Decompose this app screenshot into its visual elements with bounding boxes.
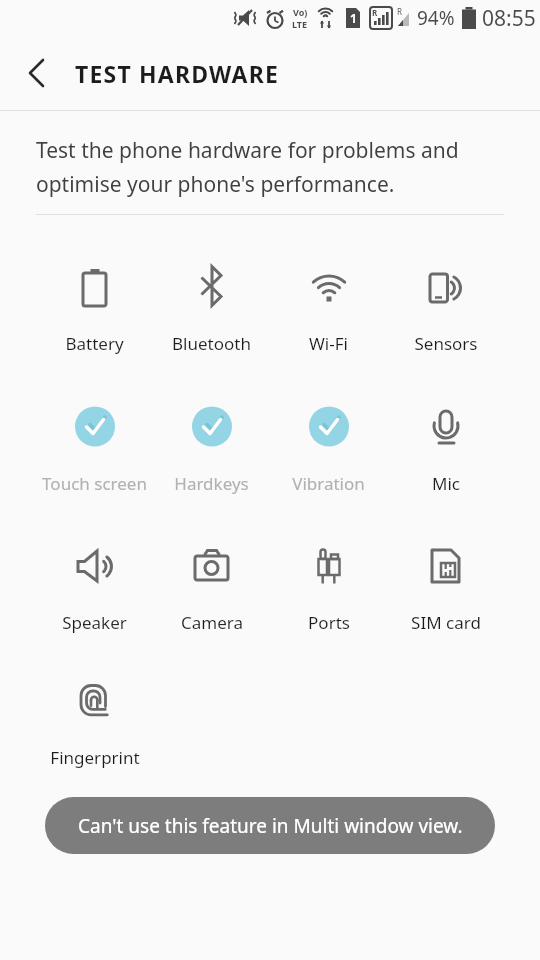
button[interactable]: Speaker — [36, 541, 153, 634]
staticText: 08:55 — [482, 4, 536, 33]
staticText: 94% — [417, 5, 455, 31]
staticText: Ports — [308, 611, 350, 634]
staticText: Test the phone hardware for problems and… — [36, 136, 459, 198]
staticText: Can't use this feature in Multi window v… — [78, 813, 463, 839]
button[interactable]: Touch screen — [36, 402, 153, 495]
staticText: Speaker — [62, 611, 127, 634]
staticText: Battery — [65, 332, 124, 355]
staticText: Camera — [181, 611, 243, 634]
staticText: Vibration — [292, 472, 365, 495]
button[interactable]: Vibration — [270, 402, 387, 495]
button[interactable]: Sensors — [387, 262, 504, 355]
button[interactable]: Mic — [387, 402, 504, 495]
button[interactable]: Can't use this feature in Multi window v… — [45, 797, 495, 854]
button[interactable]: Ports — [270, 541, 387, 634]
staticText: Wi-Fi — [309, 332, 348, 355]
staticText: Fingerprint — [50, 746, 140, 769]
staticText: Vo) — [293, 6, 308, 18]
button[interactable] — [12, 49, 60, 97]
staticText: Sensors — [414, 332, 478, 355]
staticText: Touch screen — [42, 472, 147, 495]
button[interactable]: Camera — [153, 541, 270, 634]
button[interactable]: Hardkeys — [153, 402, 270, 495]
button[interactable]: Bluetooth — [153, 262, 270, 355]
staticText: TEST HARDWARE — [75, 58, 280, 89]
staticText: 1 — [350, 10, 357, 26]
button[interactable]: SIM card — [387, 541, 504, 634]
button[interactable]: Fingerprint — [36, 676, 153, 769]
staticText: Hardkeys — [174, 472, 249, 495]
staticText: R — [372, 7, 378, 18]
staticText: Mic — [432, 472, 460, 495]
button[interactable]: Battery — [36, 262, 153, 355]
staticText: Bluetooth — [172, 332, 251, 355]
staticText: LTE — [292, 18, 308, 30]
staticText: SIM card — [411, 611, 481, 634]
staticText: R — [397, 6, 402, 17]
button[interactable]: Wi-Fi — [270, 262, 387, 355]
